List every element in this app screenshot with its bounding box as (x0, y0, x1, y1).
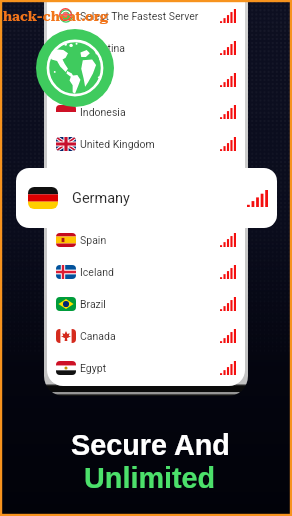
button[interactable]: Argentina (47, 32, 245, 64)
button[interactable]: France (47, 64, 245, 96)
staticText: Unlimited (84, 462, 216, 494)
button[interactable]: Indonesia (47, 96, 245, 128)
button[interactable]: Germany (47, 192, 245, 224)
staticText: Brazil (80, 298, 106, 310)
staticText: France (80, 74, 112, 86)
button[interactable]: Globe (36, 29, 114, 107)
staticText: United Kingdom (80, 138, 155, 150)
button[interactable]: United Kingdom (47, 128, 245, 160)
staticText: Egypt (80, 362, 107, 374)
button[interactable]: Egypt (47, 352, 245, 384)
button[interactable]: Spain (47, 224, 245, 256)
button[interactable]: Brazil (47, 288, 245, 320)
staticText: Indonesia (80, 106, 126, 118)
staticText: Select The Fastest Server (80, 10, 199, 22)
staticText: Germany (80, 202, 122, 214)
staticText: Iceland (80, 266, 114, 278)
staticText: Canada (80, 330, 116, 342)
button[interactable]: Iceland (47, 256, 245, 288)
button[interactable]: Canada (47, 320, 245, 352)
staticText: Germany (72, 190, 130, 207)
staticText: Spain (80, 234, 107, 246)
staticText: Secure And (71, 429, 230, 461)
button[interactable]: Select The Fastest Server (47, 0, 245, 32)
button[interactable]: Germany (16, 168, 277, 228)
button[interactable]: Netherlands (47, 160, 245, 192)
staticText: hack-cheat.org (3, 8, 109, 24)
staticText: Argentina (80, 42, 126, 54)
